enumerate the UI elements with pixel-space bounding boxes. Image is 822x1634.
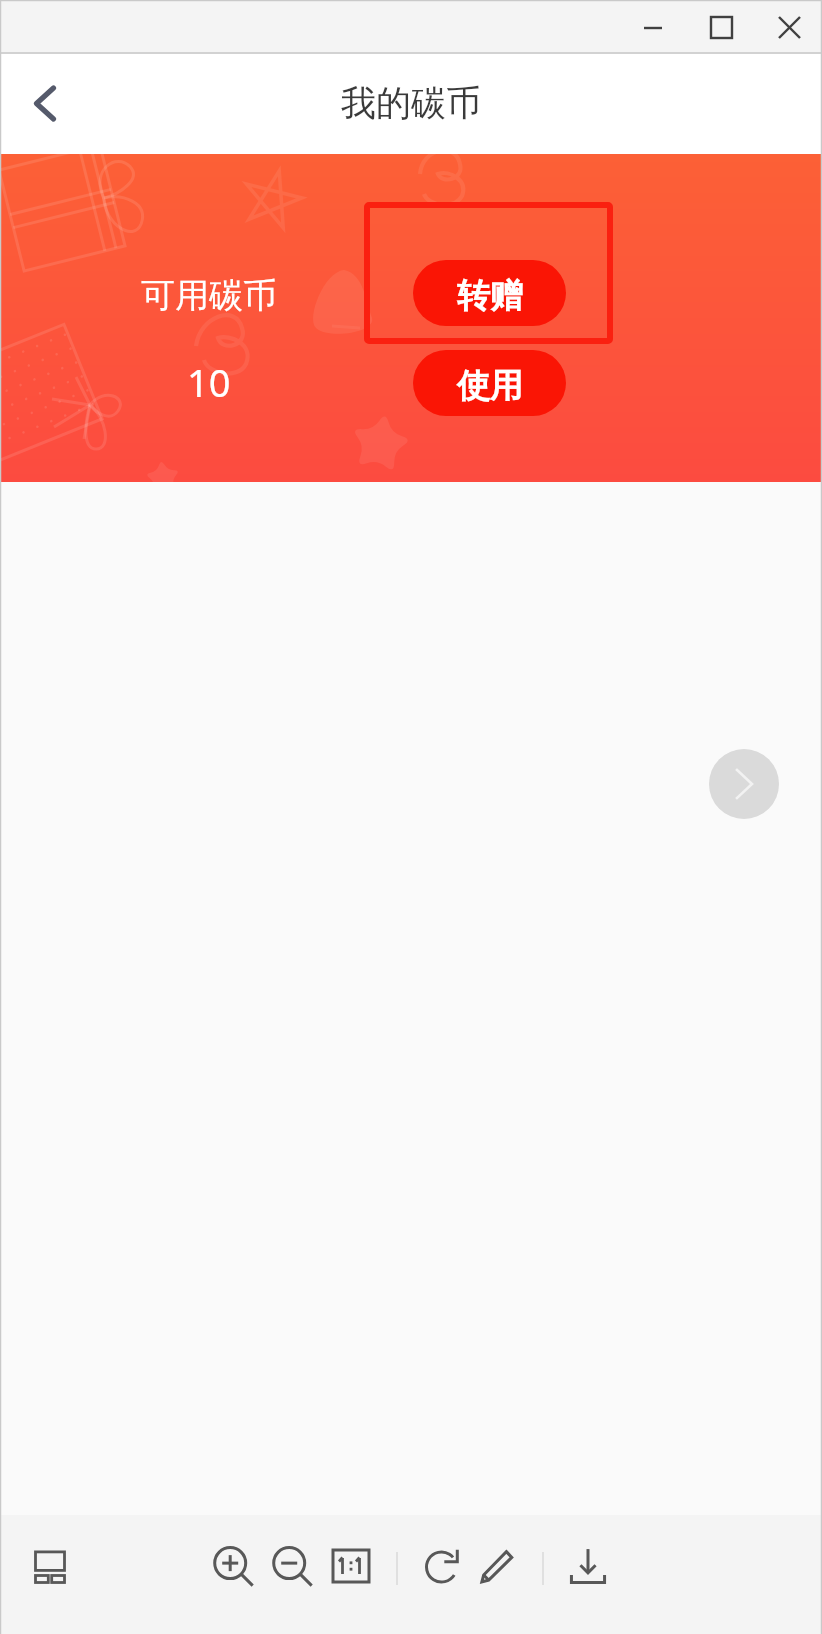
button[interactable]: Edit [463, 1532, 531, 1600]
button[interactable]: Rotate [409, 1532, 477, 1600]
button[interactable]: Maximize [686, 1, 754, 53]
button[interactable]: 使用 [413, 350, 566, 416]
button[interactable]: Zoom out [257, 1532, 325, 1600]
staticText: 可用碳币 [141, 274, 277, 317]
staticText: 转赠 [457, 275, 523, 317]
staticText: 10 [187, 356, 231, 408]
button[interactable]: Close [754, 1, 822, 53]
button[interactable]: Back [0, 54, 90, 154]
button[interactable]: 转赠 [413, 260, 566, 326]
button[interactable]: Zoom in [198, 1532, 266, 1600]
button[interactable]: Thumbnails [16, 1532, 84, 1600]
button[interactable]: Next page [709, 749, 779, 819]
button[interactable]: Actual size [317, 1532, 385, 1600]
button[interactable]: Download [554, 1532, 622, 1600]
staticText: 使用 [457, 365, 523, 407]
staticText: 我的碳币 [341, 81, 481, 125]
button[interactable]: Minimize [618, 1, 686, 53]
